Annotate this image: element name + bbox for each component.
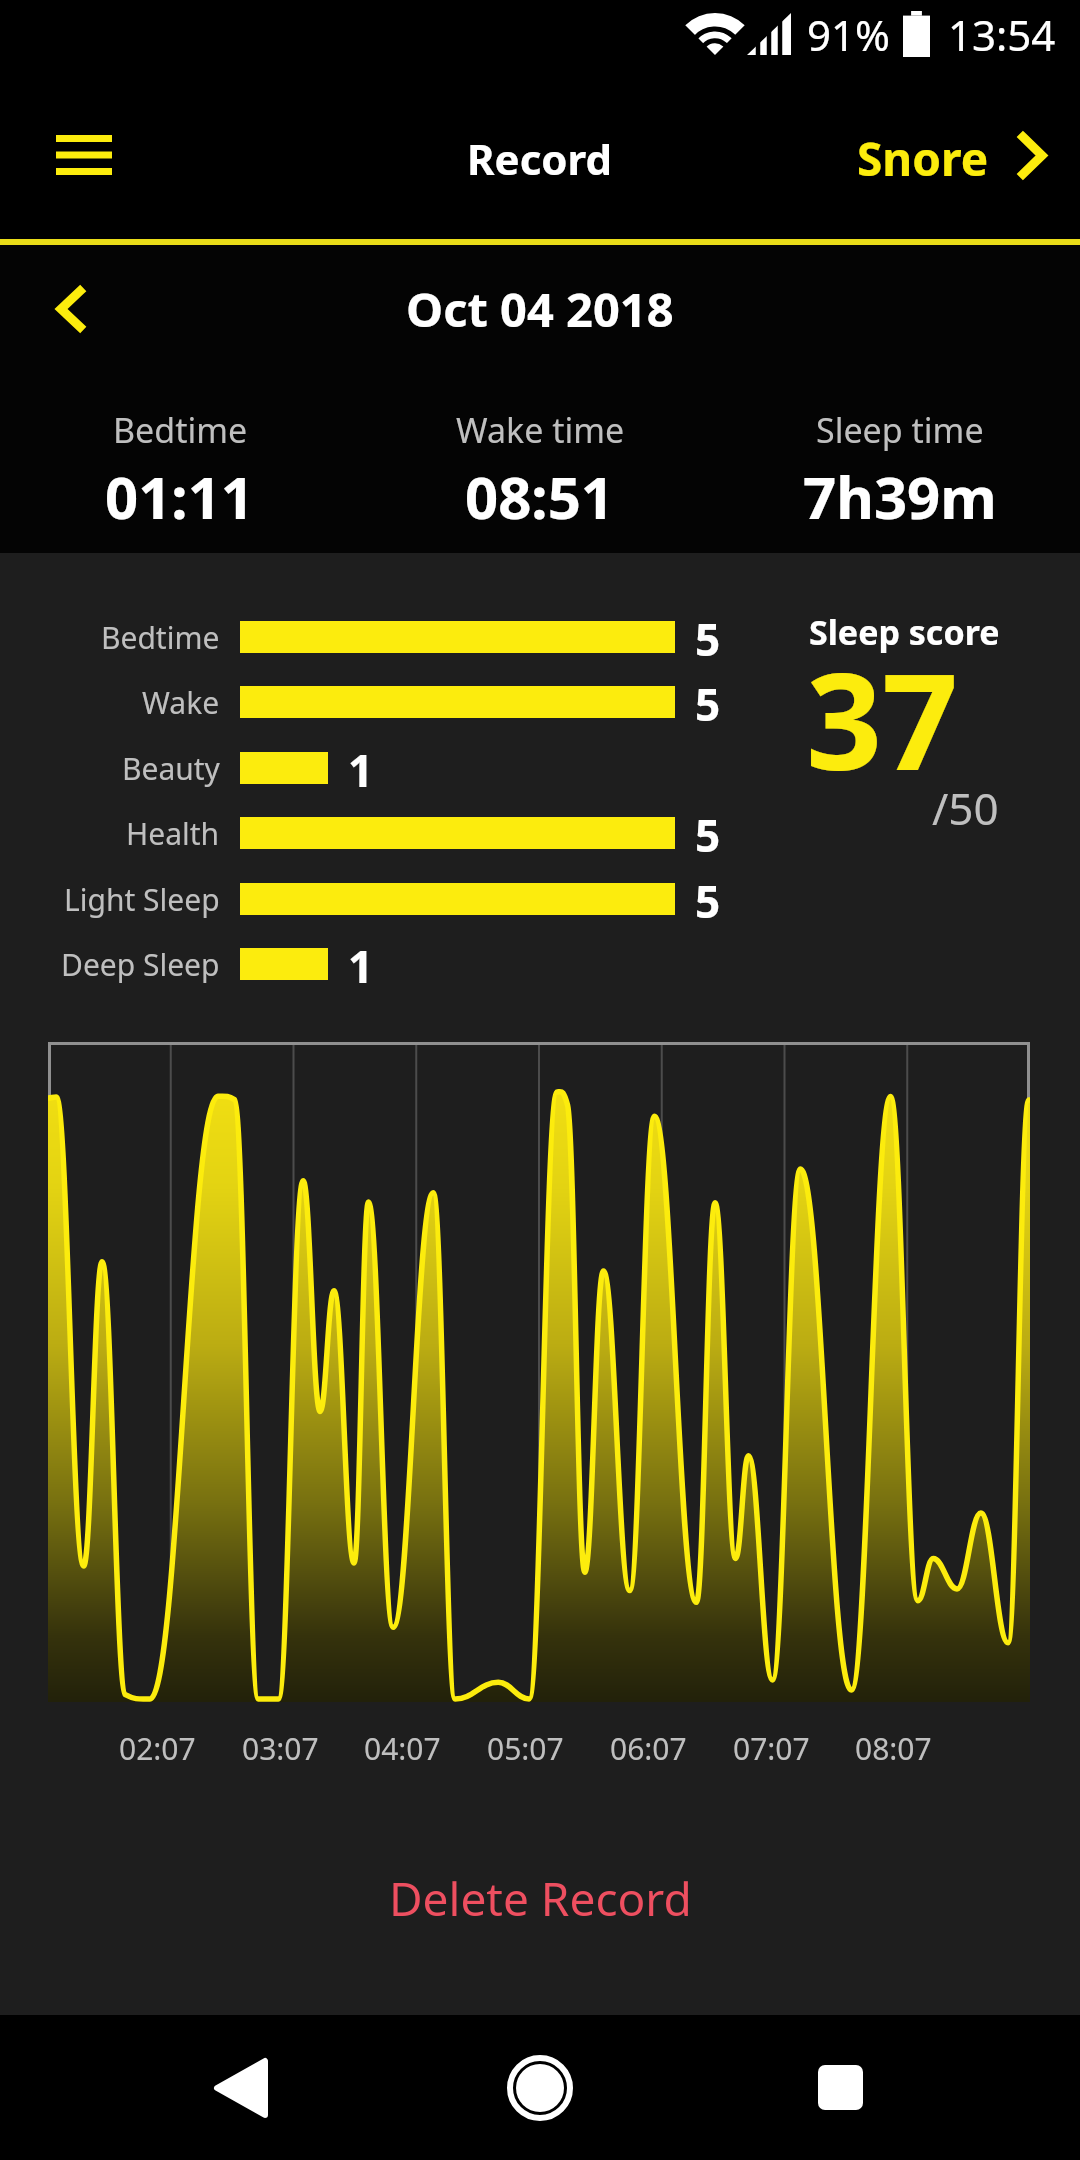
staticText: 02:07 bbox=[119, 1728, 196, 1769]
staticText: 37 bbox=[806, 628, 959, 809]
staticText: Sleep time bbox=[816, 407, 984, 453]
button[interactable]: Snore bbox=[857, 127, 1046, 190]
button[interactable]: Recents bbox=[790, 2015, 890, 2160]
staticText: Beauty bbox=[122, 748, 220, 789]
button[interactable]: Delete Record bbox=[0, 1843, 1080, 1953]
staticText: 05:07 bbox=[487, 1728, 564, 1769]
staticText: Deep Sleep bbox=[61, 944, 220, 985]
staticText: 5 bbox=[695, 871, 721, 927]
staticText: 03:07 bbox=[242, 1728, 319, 1769]
staticText: Wake time bbox=[456, 407, 625, 453]
staticText: Bedtime bbox=[101, 617, 220, 658]
staticText: 08:07 bbox=[855, 1728, 932, 1769]
button[interactable]: Menu bbox=[30, 113, 138, 197]
button[interactable]: Back bbox=[190, 2015, 290, 2160]
staticText: Oct 04 2018 bbox=[406, 277, 674, 341]
staticText: 1 bbox=[348, 936, 374, 992]
staticText: /50 bbox=[932, 778, 999, 838]
staticText: Sleep score bbox=[809, 609, 1000, 655]
staticText: Delete Record bbox=[389, 1867, 692, 1930]
staticText: Snore bbox=[857, 127, 989, 190]
staticText: 91% bbox=[807, 6, 890, 63]
staticText: Record bbox=[467, 130, 613, 187]
staticText: Bedtime bbox=[113, 407, 248, 453]
staticText: 07:07 bbox=[733, 1728, 810, 1769]
staticText: 1 bbox=[348, 740, 374, 796]
staticText: 01:11 bbox=[105, 457, 255, 536]
staticText: 06:07 bbox=[610, 1728, 687, 1769]
staticText: Wake bbox=[142, 682, 220, 723]
staticText: 04:07 bbox=[364, 1728, 441, 1769]
staticText: Light Sleep bbox=[64, 879, 220, 920]
staticText: 5 bbox=[695, 805, 721, 861]
button[interactable]: Home bbox=[490, 2015, 590, 2160]
staticText: 7h39m bbox=[803, 457, 997, 536]
staticText: Health bbox=[126, 813, 220, 854]
staticText: 5 bbox=[695, 609, 721, 665]
staticText: 13:54 bbox=[948, 6, 1056, 63]
staticText: 08:51 bbox=[465, 457, 615, 536]
button[interactable]: Previous day bbox=[30, 273, 110, 345]
staticText: 5 bbox=[695, 674, 721, 730]
